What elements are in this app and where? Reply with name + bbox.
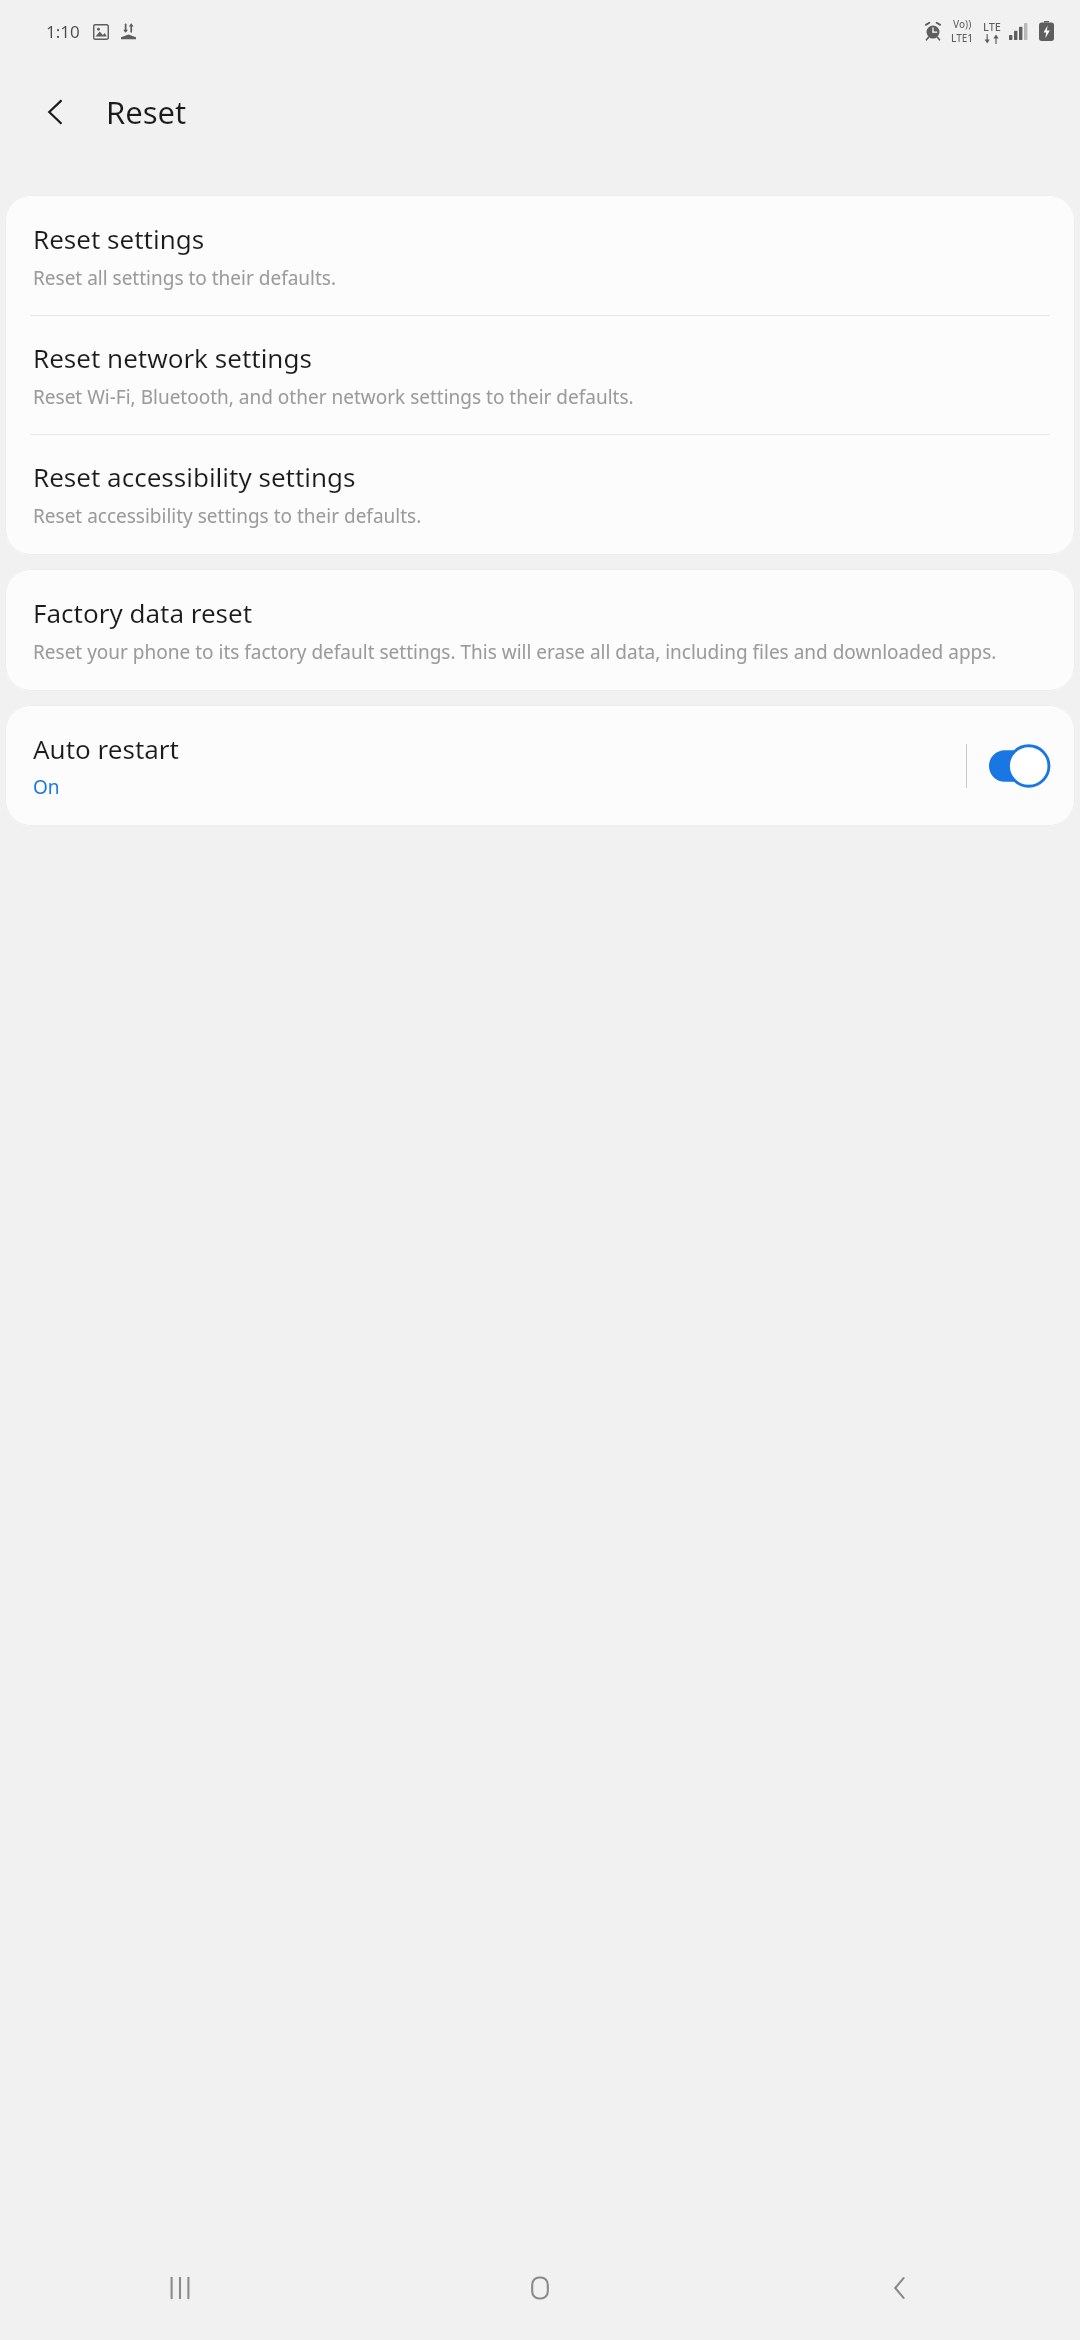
staticText: LTE1 bbox=[951, 31, 974, 45]
staticText: 1:10 bbox=[46, 20, 80, 43]
staticText: Reset Wi-Fi, Bluetooth, and other networ… bbox=[33, 384, 634, 410]
staticText: Reset network settings bbox=[33, 340, 312, 375]
button[interactable]: Auto restart bbox=[5, 705, 1075, 826]
button[interactable]: Auto restart toggle, on bbox=[989, 744, 1051, 788]
button[interactable]: Reset network settings bbox=[5, 316, 1075, 434]
staticText: Reset bbox=[106, 91, 187, 133]
button[interactable]: Home bbox=[360, 2236, 720, 2340]
staticText: LTE bbox=[983, 19, 1001, 34]
staticText: Reset accessibility settings to their de… bbox=[33, 503, 422, 529]
staticText: Auto restart bbox=[33, 731, 179, 766]
staticText: Reset all settings to their defaults. bbox=[33, 265, 337, 291]
staticText: Reset settings bbox=[33, 221, 205, 256]
staticText: On bbox=[33, 774, 60, 800]
button[interactable]: Reset accessibility settings bbox=[5, 435, 1075, 555]
staticText: Vo)) bbox=[953, 17, 972, 31]
button[interactable]: Factory data reset bbox=[5, 569, 1075, 691]
button[interactable]: Back bbox=[30, 86, 82, 138]
button[interactable]: Back bbox=[720, 2236, 1080, 2340]
staticText: Factory data reset bbox=[33, 595, 253, 630]
staticText: Reset accessibility settings bbox=[33, 459, 356, 494]
staticText: Reset your phone to its factory default … bbox=[33, 639, 997, 665]
button[interactable]: Recent apps bbox=[0, 2236, 360, 2340]
button[interactable]: Reset settings bbox=[5, 195, 1075, 315]
